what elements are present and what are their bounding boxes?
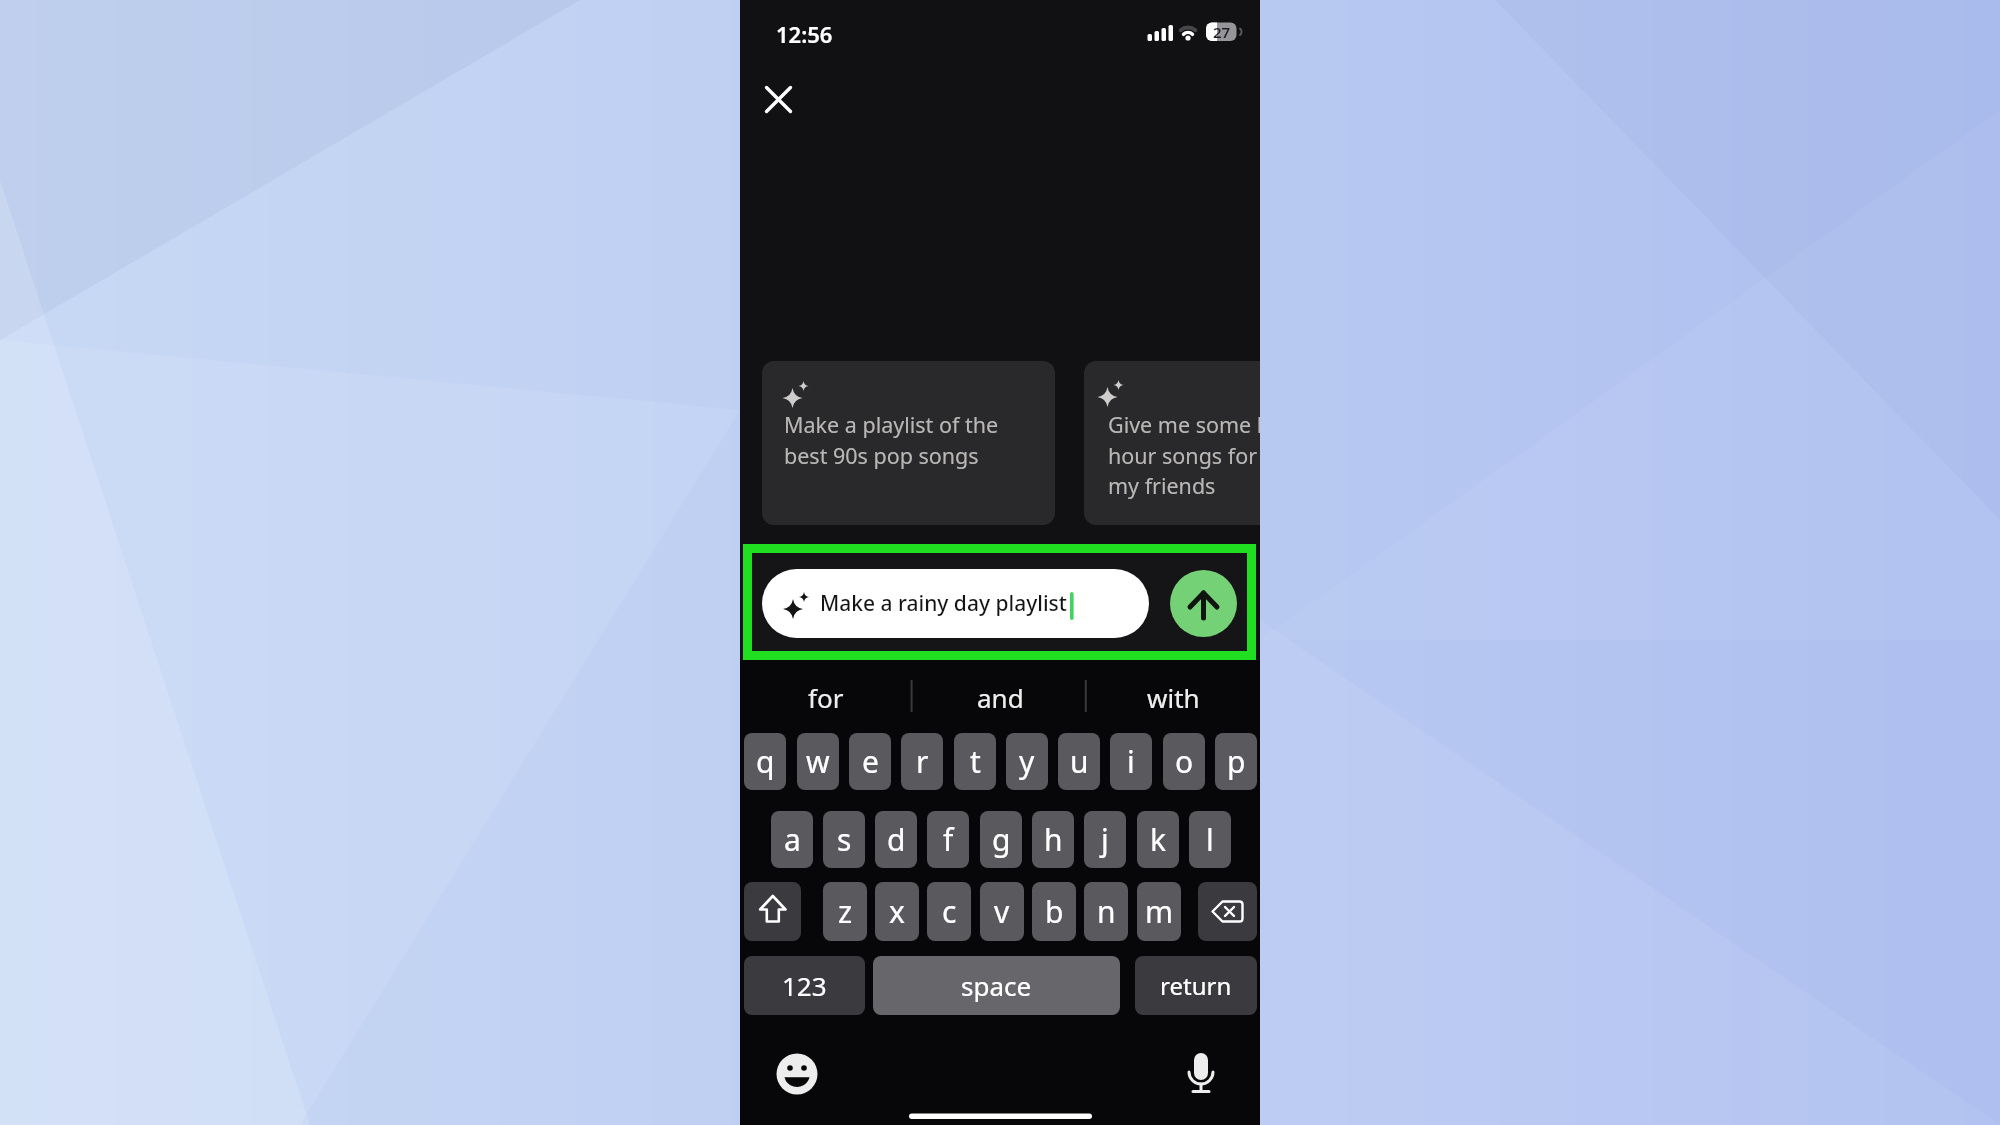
button[interactable]: Give me some h hour songs for m my frien… bbox=[1084, 361, 1260, 525]
button[interactable]: m bbox=[1137, 882, 1181, 941]
button[interactable]: 123 bbox=[744, 956, 865, 1015]
button[interactable]: d bbox=[875, 811, 917, 868]
button[interactable]: z bbox=[823, 882, 867, 941]
button[interactable]: space bbox=[873, 956, 1120, 1015]
button[interactable]: c bbox=[927, 882, 971, 941]
button[interactable]: g bbox=[980, 811, 1022, 868]
button[interactable]: k bbox=[1137, 811, 1179, 868]
button[interactable]: e bbox=[849, 733, 891, 790]
button[interactable]: y bbox=[1006, 733, 1048, 790]
button[interactable]: h bbox=[1032, 811, 1074, 868]
button[interactable]: Make a rainy day playlist bbox=[762, 569, 1149, 638]
staticText: Make a playlist of the best 90s pop song… bbox=[784, 410, 999, 470]
button[interactable]: u bbox=[1058, 733, 1100, 790]
button[interactable]: x bbox=[875, 882, 919, 941]
staticText: Make a rainy day playlist bbox=[820, 589, 1067, 618]
staticText: o bbox=[1175, 741, 1194, 782]
staticText: r bbox=[916, 741, 929, 782]
button[interactable]: r bbox=[901, 733, 943, 790]
staticText: Give me some h hour songs for m my frien… bbox=[1108, 410, 1260, 500]
staticText: 123 bbox=[782, 968, 827, 1003]
button[interactable]: b bbox=[1032, 882, 1076, 941]
button[interactable]: w bbox=[797, 733, 839, 790]
staticText: t bbox=[970, 741, 981, 782]
staticText: c bbox=[942, 891, 957, 932]
button[interactable]: i bbox=[1110, 733, 1152, 790]
staticText: p bbox=[1227, 741, 1246, 782]
staticText: a bbox=[784, 819, 801, 860]
button[interactable]: for bbox=[766, 678, 886, 716]
staticText: space bbox=[961, 968, 1032, 1003]
button[interactable]: f bbox=[927, 811, 969, 868]
button[interactable]: p bbox=[1215, 733, 1257, 790]
button[interactable]: a bbox=[771, 811, 813, 868]
staticText: n bbox=[1097, 891, 1116, 932]
staticText: z bbox=[838, 891, 853, 932]
staticText: y bbox=[1019, 741, 1035, 782]
staticText: f bbox=[943, 819, 954, 860]
staticText: e bbox=[862, 741, 879, 782]
button[interactable]: t bbox=[954, 733, 996, 790]
button[interactable]: s bbox=[823, 811, 865, 868]
button[interactable]: j bbox=[1084, 811, 1126, 868]
button[interactable]: v bbox=[980, 882, 1024, 941]
staticText: b bbox=[1045, 891, 1064, 932]
staticText: 27 bbox=[1213, 22, 1231, 41]
staticText: m bbox=[1145, 891, 1174, 932]
button[interactable]: n bbox=[1084, 882, 1128, 941]
staticText: g bbox=[992, 819, 1011, 860]
button[interactable] bbox=[1198, 882, 1257, 941]
button[interactable] bbox=[744, 882, 801, 941]
staticText: w bbox=[806, 741, 830, 782]
button[interactable]: o bbox=[1163, 733, 1205, 790]
button[interactable]: with bbox=[1113, 678, 1233, 716]
staticText: k bbox=[1150, 819, 1167, 860]
staticText: for bbox=[808, 680, 844, 715]
staticText: q bbox=[756, 741, 775, 782]
staticText: x bbox=[889, 891, 905, 932]
button[interactable]: q bbox=[744, 733, 786, 790]
staticText: h bbox=[1044, 819, 1063, 860]
staticText: i bbox=[1127, 741, 1135, 782]
button[interactable]: and bbox=[940, 678, 1060, 716]
staticText: return bbox=[1160, 969, 1232, 1002]
staticText: d bbox=[887, 819, 906, 860]
button[interactable] bbox=[754, 75, 802, 123]
staticText: u bbox=[1070, 741, 1089, 782]
staticText: v bbox=[994, 891, 1010, 932]
staticText: s bbox=[837, 819, 852, 860]
button[interactable]: l bbox=[1189, 811, 1231, 868]
staticText: j bbox=[1101, 819, 1109, 860]
staticText: 12:56 bbox=[776, 19, 833, 49]
button[interactable]: Make a playlist of the best 90s pop song… bbox=[762, 361, 1055, 525]
staticText: l bbox=[1206, 819, 1214, 860]
button[interactable]: return bbox=[1135, 956, 1257, 1015]
staticText: with bbox=[1147, 680, 1200, 715]
staticText: and bbox=[977, 680, 1024, 715]
button[interactable] bbox=[1170, 570, 1237, 637]
